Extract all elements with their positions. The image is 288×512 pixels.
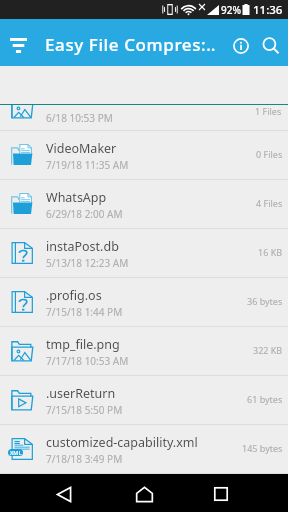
button[interactable]: Search bbox=[256, 31, 286, 60]
staticText: 61 bytes bbox=[247, 393, 283, 405]
staticText: Easy File Compres:… bbox=[45, 33, 216, 56]
staticText: 16 KB bbox=[258, 246, 283, 258]
staticText: 7/18/18 3:49 PM bbox=[46, 452, 123, 466]
button[interactable]: WhatsApp bbox=[0, 180, 288, 228]
button[interactable]: .profig.os bbox=[0, 278, 288, 326]
staticText: 1 Files bbox=[255, 105, 282, 117]
button[interactable]: .userReturn bbox=[0, 376, 288, 424]
button[interactable]: Sort bbox=[2, 31, 35, 60]
staticText: 5/13/18 12:23 AM bbox=[46, 256, 129, 270]
staticText: 7/17/18 10:53 AM bbox=[46, 354, 129, 368]
staticText: instaPost.db bbox=[46, 238, 119, 255]
staticText: .userReturn bbox=[46, 385, 116, 402]
button[interactable]: XML bbox=[0, 425, 288, 473]
staticText: WhatsApp bbox=[46, 189, 107, 206]
button[interactable]: Info bbox=[226, 31, 256, 60]
staticText: tmp_file.png bbox=[46, 336, 120, 353]
button[interactable]: instaPost.db bbox=[0, 229, 288, 277]
staticText: customized-capability.xml bbox=[46, 434, 198, 451]
staticText: 145 bytes bbox=[242, 442, 283, 454]
staticText: VideoMaker bbox=[46, 140, 117, 157]
staticText: 4 Files bbox=[256, 197, 283, 209]
staticText: 7/19/18 11:35 AM bbox=[46, 158, 129, 172]
staticText: 92% bbox=[221, 3, 241, 17]
staticText: .profig.os bbox=[46, 287, 102, 304]
button[interactable]: Home bbox=[120, 475, 168, 512]
staticText: XML bbox=[10, 449, 22, 456]
staticText: 7/15/18 5:50 PM bbox=[46, 403, 123, 417]
staticText: 11:36 bbox=[253, 2, 283, 18]
button[interactable]: tmp_file.png bbox=[0, 327, 288, 375]
staticText: 7/15/18 1:44 PM bbox=[46, 305, 123, 319]
staticText: 6/29/18 2:00 AM bbox=[46, 207, 123, 221]
staticText: 36 bytes bbox=[247, 295, 283, 307]
staticText: 322 KB bbox=[253, 344, 283, 356]
button[interactable]: VideoMaker bbox=[0, 131, 288, 179]
button[interactable]: Recent apps bbox=[197, 475, 245, 512]
button[interactable]: Back bbox=[40, 475, 88, 512]
staticText: 0 Files bbox=[256, 148, 283, 160]
staticText: 6/18 10:53 PM bbox=[46, 111, 113, 125]
